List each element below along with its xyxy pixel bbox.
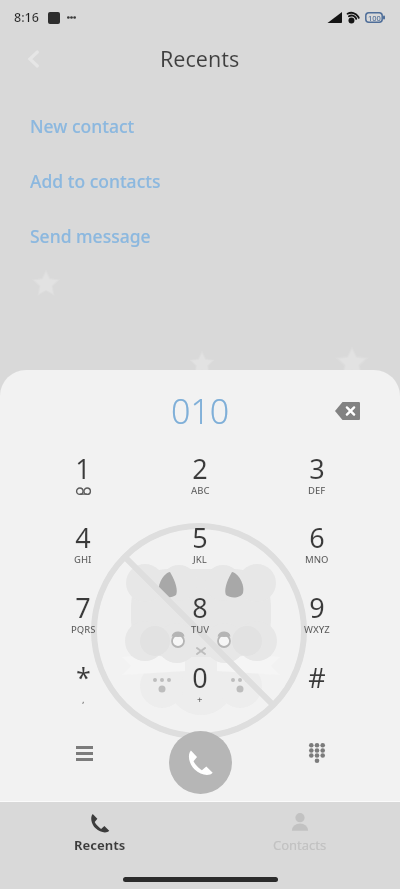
staticText: 8 — [192, 589, 208, 626]
staticText: 6 — [309, 519, 325, 556]
button[interactable]: 9 — [283, 582, 351, 640]
staticText: 1 — [75, 450, 91, 487]
button[interactable]: Call — [169, 731, 232, 794]
staticText: MNO — [305, 553, 329, 566]
button[interactable]: Send message — [30, 224, 151, 248]
button[interactable]: 7 — [49, 582, 117, 640]
button[interactable]: 0 — [166, 652, 234, 710]
button[interactable]: 8 — [166, 582, 234, 640]
staticText: Send message — [30, 224, 151, 248]
staticText: PQRS — [71, 623, 96, 636]
staticText: GHI — [74, 553, 92, 566]
button[interactable]: Keypad — [295, 731, 339, 775]
button[interactable]: 4 — [49, 512, 117, 570]
staticText: 3 — [309, 450, 325, 487]
staticText: DEF — [308, 484, 326, 497]
button[interactable]: 5 — [166, 512, 234, 570]
staticText: * — [76, 659, 91, 696]
staticText: 9 — [309, 589, 325, 626]
staticText: 010 — [171, 388, 230, 434]
staticText: 100 — [368, 13, 381, 23]
staticText: , — [82, 693, 85, 706]
button[interactable]: Call log — [62, 731, 106, 775]
staticText: JKL — [193, 553, 207, 566]
staticText: + — [197, 693, 203, 706]
staticText: Recents — [74, 836, 126, 854]
button[interactable]: 2 — [166, 443, 234, 501]
button[interactable]: * — [49, 652, 117, 710]
button[interactable]: Recents — [0, 802, 200, 824]
staticText: 5 — [192, 519, 208, 556]
button[interactable]: 3 — [283, 443, 351, 501]
staticText: 0 — [192, 659, 208, 696]
staticText: 4 — [75, 519, 91, 556]
button[interactable]: New contact — [30, 114, 135, 138]
staticText: ABC — [191, 484, 210, 497]
staticText: Add to contacts — [30, 169, 161, 193]
staticText: 7 — [75, 589, 91, 626]
button[interactable]: # — [283, 652, 351, 710]
staticText: TUV — [191, 623, 210, 636]
staticText: # — [308, 659, 326, 696]
button[interactable]: 6 — [283, 512, 351, 570]
staticText: 2 — [192, 450, 208, 487]
staticText: WXYZ — [304, 623, 330, 636]
staticText: Contacts — [273, 836, 327, 854]
button[interactable]: Add to contacts — [30, 169, 161, 193]
staticText: 8:16 — [14, 9, 39, 26]
button[interactable]: 1 — [49, 443, 117, 501]
staticText: Recents — [160, 44, 240, 73]
button[interactable]: Backspace — [328, 392, 366, 430]
staticText: New contact — [30, 114, 135, 138]
